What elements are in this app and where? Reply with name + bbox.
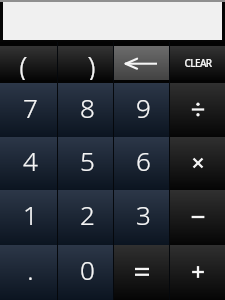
button[interactable]: 7 <box>0 83 57 137</box>
button[interactable]: Subtract <box>169 190 225 245</box>
staticText: ) <box>87 46 96 80</box>
button[interactable]: 2 <box>57 190 113 245</box>
button[interactable]: 1 <box>0 190 57 245</box>
staticText: 6 <box>136 143 151 178</box>
button[interactable]: 8 <box>57 83 113 137</box>
staticText: 3 <box>136 197 151 232</box>
staticText: 1 <box>23 197 38 232</box>
staticText: 2 <box>80 197 95 232</box>
button[interactable]: Add <box>169 245 225 300</box>
staticText: 8 <box>80 90 95 125</box>
button[interactable]: Equals <box>113 245 169 300</box>
staticText: 0 <box>80 252 95 287</box>
button[interactable]: 9 <box>113 83 169 137</box>
button[interactable]: Multiply <box>169 137 225 190</box>
staticText: 7 <box>23 90 38 125</box>
staticText: CLEAR <box>184 56 212 70</box>
button[interactable]: . <box>0 245 57 300</box>
button[interactable]: Backspace <box>113 42 169 83</box>
staticText: . <box>27 252 34 287</box>
button[interactable]: 0 <box>57 245 113 300</box>
staticText: 5 <box>80 143 95 178</box>
button[interactable]: 3 <box>113 190 169 245</box>
button[interactable]: ( <box>0 42 57 83</box>
button[interactable]: CLEAR <box>169 42 225 83</box>
button[interactable]: Divide <box>169 83 225 137</box>
staticText: 4 <box>23 143 38 178</box>
staticText: ( <box>19 46 28 80</box>
button[interactable]: 4 <box>0 137 57 190</box>
staticText: 9 <box>136 90 151 125</box>
button[interactable]: 5 <box>57 137 113 190</box>
button[interactable]: ) <box>57 42 113 83</box>
button[interactable]: 6 <box>113 137 169 190</box>
